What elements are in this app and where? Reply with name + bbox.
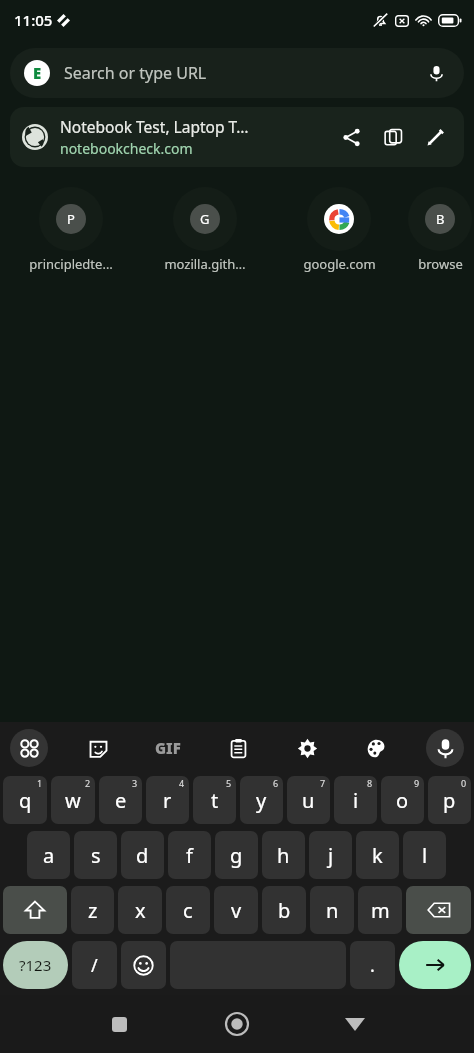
button[interactable]: t (193, 776, 236, 824)
staticText: g (230, 842, 243, 869)
button[interactable]: GIF (148, 728, 188, 768)
staticText: y (256, 787, 267, 814)
button[interactable]: k (356, 831, 399, 879)
staticText: o (396, 787, 409, 814)
staticText: k (372, 842, 383, 869)
button[interactable]: Emoji (121, 941, 166, 989)
staticText: e (115, 787, 127, 814)
staticText: Notebook Test, Laptop T… (60, 116, 249, 137)
button[interactable]: m (358, 886, 402, 934)
staticText: l (422, 842, 428, 869)
button[interactable]: Settings (288, 729, 326, 767)
button[interactable]: Share (330, 116, 372, 158)
button[interactable]: w (51, 776, 95, 824)
button[interactable]: o (381, 776, 424, 824)
button[interactable]: / (72, 941, 117, 989)
button[interactable]: u (287, 776, 330, 824)
staticText: 3 (132, 777, 138, 789)
staticText: principledte… (29, 255, 113, 273)
staticText: d (136, 842, 149, 869)
button[interactable]: c (166, 886, 210, 934)
staticText: notebookcheck.com (60, 139, 193, 158)
staticText: w (65, 787, 81, 814)
staticText: G (200, 210, 210, 228)
staticText: m (371, 897, 390, 924)
staticText: z (88, 897, 98, 924)
button[interactable]: n (310, 886, 354, 934)
button[interactable]: P (4, 185, 138, 275)
button[interactable]: y (240, 776, 283, 824)
button[interactable]: ?123 (3, 941, 68, 989)
button[interactable]: d (121, 831, 164, 879)
button[interactable]: j (309, 831, 352, 879)
button[interactable]: E (10, 48, 464, 98)
staticText: p (443, 787, 456, 814)
staticText: v (231, 897, 242, 924)
button[interactable]: q (3, 776, 47, 824)
staticText: h (277, 842, 290, 869)
staticText: / (91, 953, 98, 978)
button[interactable]: h (262, 831, 305, 879)
button[interactable]: Voice input (426, 729, 464, 767)
button[interactable]: Go (399, 941, 471, 989)
button[interactable]: Home (213, 1000, 261, 1048)
staticText: GIF (155, 738, 181, 758)
button[interactable]: Copy link (372, 116, 414, 158)
button[interactable]: b (262, 886, 306, 934)
button[interactable]: p (428, 776, 471, 824)
staticText: 2 (85, 777, 91, 789)
staticText: a (43, 842, 55, 869)
staticText: i (353, 787, 359, 814)
button[interactable]: f (168, 831, 211, 879)
button[interactable]: Voice search (422, 59, 450, 87)
button[interactable]: Apps (10, 729, 48, 767)
staticText: q (19, 787, 32, 814)
button[interactable]: G (138, 185, 272, 275)
staticText: . (370, 953, 375, 978)
staticText: f (186, 842, 193, 869)
staticText: ?123 (19, 955, 52, 975)
staticText: s (91, 842, 101, 869)
button[interactable]: l (403, 831, 446, 879)
staticText: E (33, 63, 42, 83)
button[interactable]: z (71, 886, 114, 934)
staticText: mozilla.gith… (164, 255, 246, 273)
button[interactable]: r (146, 776, 189, 824)
staticText: 7 (320, 777, 326, 789)
button[interactable]: a (27, 831, 70, 879)
staticText: 9 (414, 777, 420, 789)
staticText: c (183, 897, 193, 924)
button[interactable]: Recent apps (95, 1000, 143, 1048)
button[interactable]: Backspace (406, 886, 471, 934)
staticText: r (163, 787, 172, 814)
button[interactable]: Shift (3, 886, 67, 934)
button[interactable]: s (74, 831, 117, 879)
button[interactable]: Clipboard (219, 729, 257, 767)
button[interactable]: x (118, 886, 162, 934)
staticText: B (436, 210, 445, 228)
staticText: 1 (37, 777, 43, 789)
button[interactable]: google.com (272, 185, 406, 275)
staticText: 11:05 (14, 10, 53, 30)
staticText: 6 (273, 777, 279, 789)
button[interactable]: g (215, 831, 258, 879)
button[interactable]: i (334, 776, 377, 824)
button[interactable]: Themes (357, 729, 395, 767)
button[interactable]: Back (331, 1000, 379, 1048)
staticText: t (211, 787, 219, 814)
staticText: b (278, 897, 291, 924)
button[interactable]: v (214, 886, 258, 934)
staticText: u (302, 787, 315, 814)
staticText: n (326, 897, 339, 924)
button[interactable]: e (99, 776, 142, 824)
staticText: browse (418, 255, 463, 273)
button[interactable]: . (350, 941, 395, 989)
button[interactable]: B (406, 185, 474, 275)
button[interactable]: Edit (414, 116, 456, 158)
button[interactable]: Stickers (79, 729, 117, 767)
button[interactable]: Notebook Test, Laptop T… (10, 107, 464, 167)
staticText: google.com (303, 255, 376, 273)
staticText: j (328, 842, 334, 869)
staticText: P (67, 210, 75, 228)
